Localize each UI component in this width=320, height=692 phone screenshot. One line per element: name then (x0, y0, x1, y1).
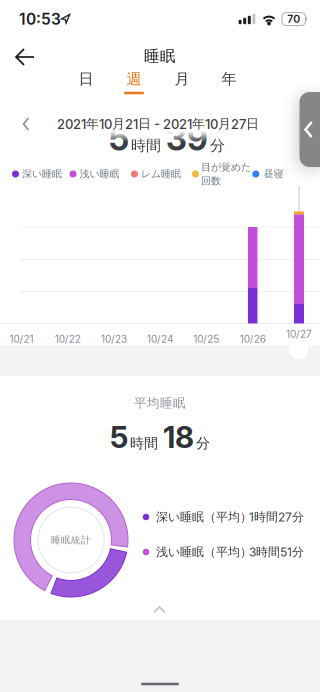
staticText: 39 (166, 118, 208, 158)
button[interactable]: 日 (66, 66, 106, 92)
staticText: 10/24 (147, 333, 173, 345)
staticText: 浅い睡眠 (79, 168, 119, 180)
staticText: 時間 (131, 136, 161, 155)
staticText: 10/27 (286, 328, 312, 340)
staticText: 深い睡眠（平均） (156, 509, 252, 524)
staticText: 5 (110, 419, 128, 455)
staticText: 10/26 (240, 333, 266, 345)
staticText: 時間 (130, 434, 158, 452)
staticText: 昼寝 (263, 168, 283, 180)
button[interactable]: Select day (289, 340, 308, 359)
staticText: 月 (174, 70, 189, 88)
staticText: 年 (221, 70, 236, 88)
button[interactable]: 週 (114, 66, 154, 92)
button[interactable]: Back (10, 44, 40, 70)
staticText: 週 (126, 70, 141, 88)
staticText: 10/25 (193, 333, 219, 345)
staticText: 平均睡眠 (134, 395, 186, 411)
button[interactable]: Open side panel (299, 92, 320, 167)
staticText: 回数 (201, 174, 221, 187)
staticText: 10/23 (101, 333, 127, 345)
staticText: 日 (78, 70, 93, 88)
staticText: 10/22 (55, 333, 81, 345)
button[interactable]: 月 (162, 66, 202, 92)
staticText: 18 (163, 419, 194, 455)
staticText: 5 (109, 118, 129, 158)
staticText: 睡眠 (144, 46, 176, 66)
staticText: レム睡眠 (141, 168, 181, 180)
staticText: 3時間51分 (249, 544, 304, 559)
staticText: 1時間27分 (249, 509, 304, 524)
staticText: 目が覚めた (201, 161, 251, 173)
staticText: 浅い睡眠（平均） (156, 544, 252, 559)
staticText: 10/21 (9, 333, 33, 345)
staticText: 10:53 (19, 10, 61, 28)
staticText: 分 (196, 434, 210, 452)
staticText: 睡眠統計 (51, 534, 91, 546)
staticText: 70 (287, 13, 300, 25)
button[interactable]: Previous week (18, 116, 34, 132)
button[interactable]: Expand (152, 605, 167, 614)
staticText: 2021年10月21日 - 2021年10月27日 (57, 116, 259, 132)
staticText: 深い睡眠 (22, 168, 62, 180)
staticText: 分 (210, 136, 225, 155)
button[interactable]: 年 (209, 66, 249, 92)
